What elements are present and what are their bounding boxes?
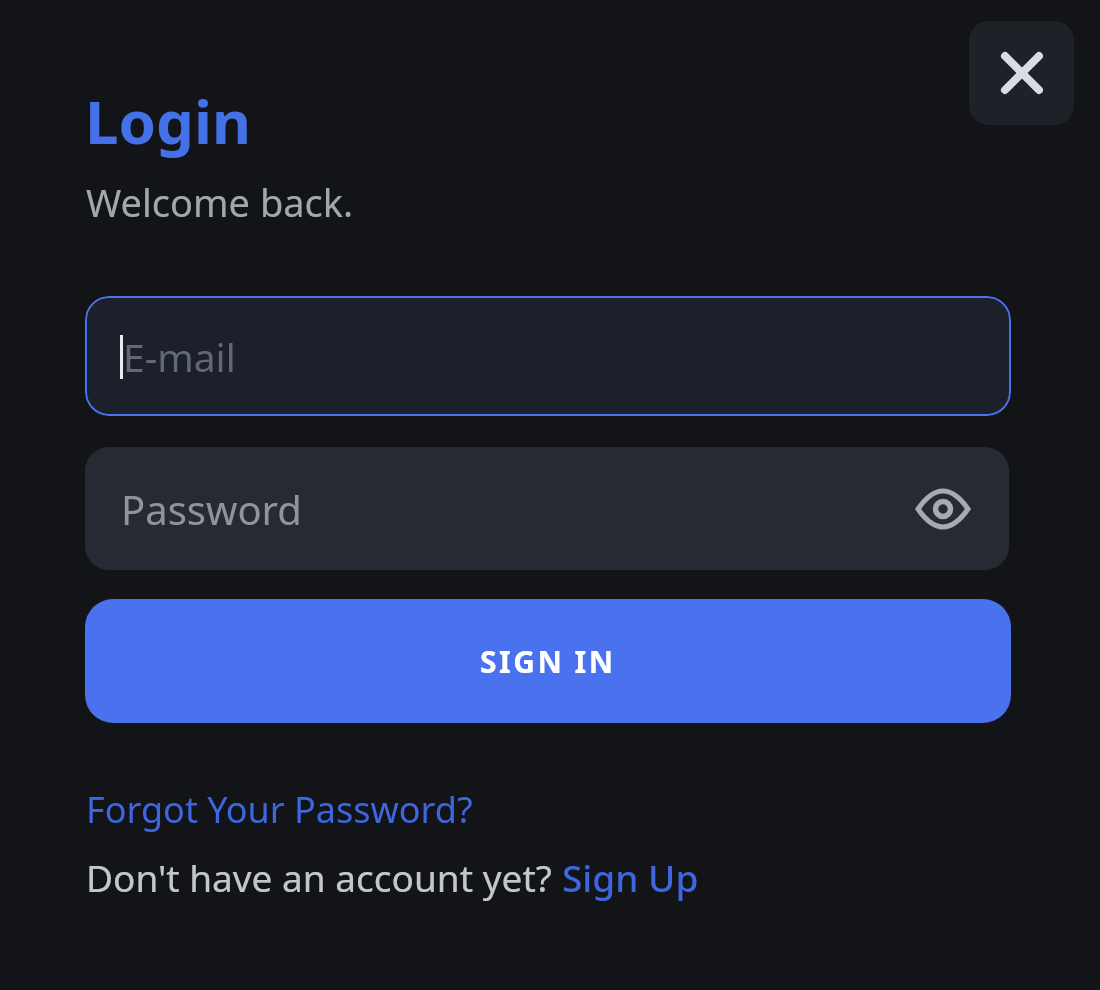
button[interactable]: Sign Up [562, 852, 699, 902]
button[interactable]: E-mail [85, 296, 1011, 416]
button[interactable]: SIGN IN [85, 599, 1011, 723]
staticText: Password [121, 482, 302, 536]
staticText: E-mail [123, 330, 236, 383]
staticText: Sign Up [562, 852, 699, 902]
staticText: Forgot Your Password? [86, 785, 473, 834]
staticText: Don't have an account yet? [86, 852, 562, 902]
button[interactable] [969, 21, 1074, 125]
staticText: Welcome back. [86, 176, 354, 228]
button[interactable]: Password [85, 447, 1009, 570]
button[interactable]: Forgot Your Password? [86, 785, 473, 834]
staticText: Login [85, 80, 251, 162]
staticText: SIGN IN [480, 641, 616, 682]
